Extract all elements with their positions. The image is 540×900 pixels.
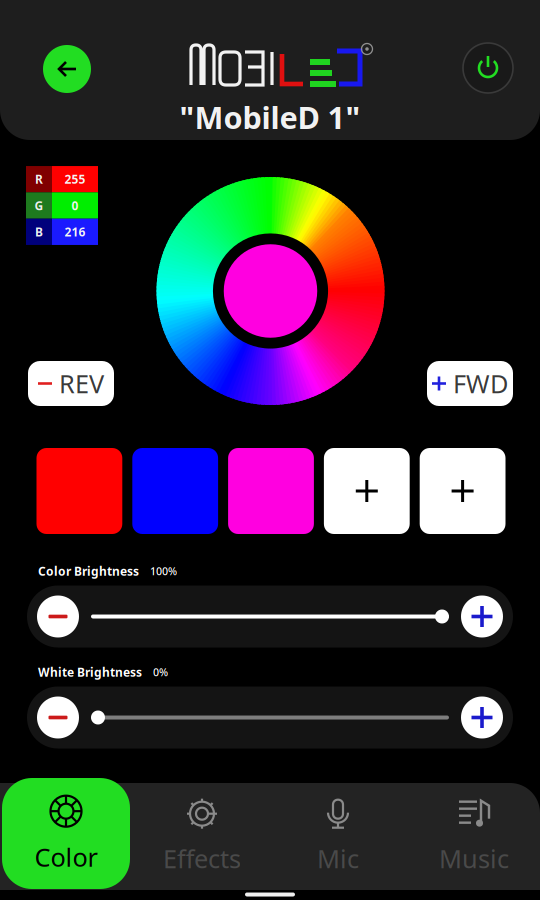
button[interactable]: Music (410, 780, 538, 891)
button[interactable]: Color swatch (36, 448, 122, 534)
button[interactable]: Effects (138, 780, 266, 891)
staticText: 0% (153, 665, 168, 679)
button[interactable]: Color (2, 778, 130, 889)
button[interactable]: Color swatch (228, 448, 314, 534)
button[interactable]: Mic (274, 780, 402, 891)
button[interactable]: Power (463, 43, 513, 93)
staticText: 0 (71, 197, 78, 213)
button[interactable]: REV (28, 361, 114, 406)
button[interactable]: Increase (461, 595, 503, 637)
button[interactable]: Add color (420, 448, 505, 534)
staticText: Color Brightness (38, 563, 139, 579)
staticText: 100% (150, 564, 177, 578)
staticText: G (34, 197, 43, 213)
staticText: White Brightness (38, 664, 142, 680)
staticText: 216 (64, 224, 85, 240)
button[interactable]: Decrease (37, 696, 79, 738)
button[interactable]: Decrease (37, 595, 79, 637)
staticText: "MobileD 1" (179, 97, 360, 137)
button[interactable]: Add color (324, 448, 410, 534)
button[interactable]: Color swatch (132, 448, 218, 534)
staticText: Effects (163, 842, 241, 875)
staticText: R (35, 171, 43, 187)
staticText: FWD (453, 367, 508, 400)
staticText: REV (59, 367, 104, 400)
button[interactable]: FWD (427, 361, 513, 406)
staticText: Music (439, 842, 509, 875)
staticText: Mic (317, 842, 359, 875)
staticText: Color (34, 840, 97, 874)
staticText: B (35, 224, 43, 240)
button[interactable]: Increase (461, 696, 503, 738)
staticText: 255 (64, 171, 85, 187)
button[interactable]: Back (43, 45, 91, 93)
